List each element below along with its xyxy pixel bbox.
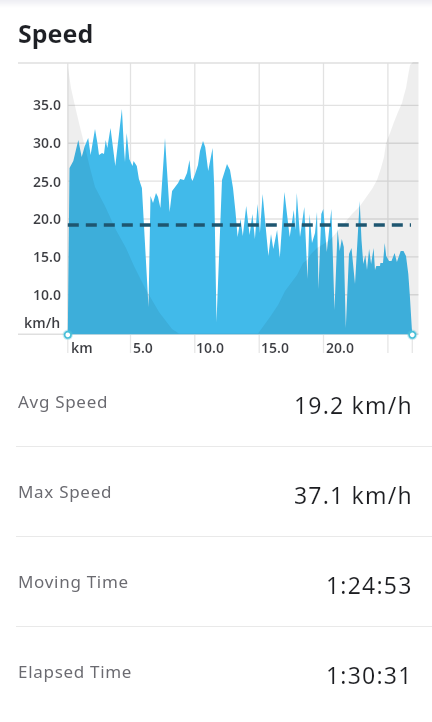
staticText: 25.0 — [33, 172, 61, 191]
staticText: Speed — [18, 16, 94, 50]
staticText: Max Speed — [18, 480, 113, 503]
staticText: Elapsed Time — [18, 660, 133, 683]
staticText: 5.0 — [133, 338, 153, 357]
button[interactable]: Moving Time — [0, 542, 432, 628]
button[interactable]: Max Speed — [0, 452, 432, 538]
staticText: 15.0 — [33, 247, 61, 266]
staticText: km/h — [24, 313, 61, 332]
staticText: 1:30:31 — [326, 659, 413, 690]
staticText: 1:24:53 — [326, 569, 413, 600]
staticText: Moving Time — [18, 570, 129, 593]
staticText: 37.1 km/h — [294, 479, 413, 510]
staticText: 20.0 — [326, 338, 354, 357]
staticText: 30.0 — [33, 133, 61, 152]
staticText: 10.0 — [33, 285, 61, 304]
staticText: 35.0 — [33, 95, 61, 114]
staticText: 15.0 — [261, 338, 289, 357]
staticText: km — [71, 338, 93, 357]
staticText: 19.2 km/h — [294, 389, 413, 420]
staticText: 10.0 — [196, 338, 224, 357]
button[interactable]: Avg Speed — [0, 362, 432, 448]
button[interactable]: Elapsed Time — [0, 632, 432, 718]
staticText: 20.0 — [33, 209, 61, 228]
staticText: Avg Speed — [18, 390, 109, 413]
